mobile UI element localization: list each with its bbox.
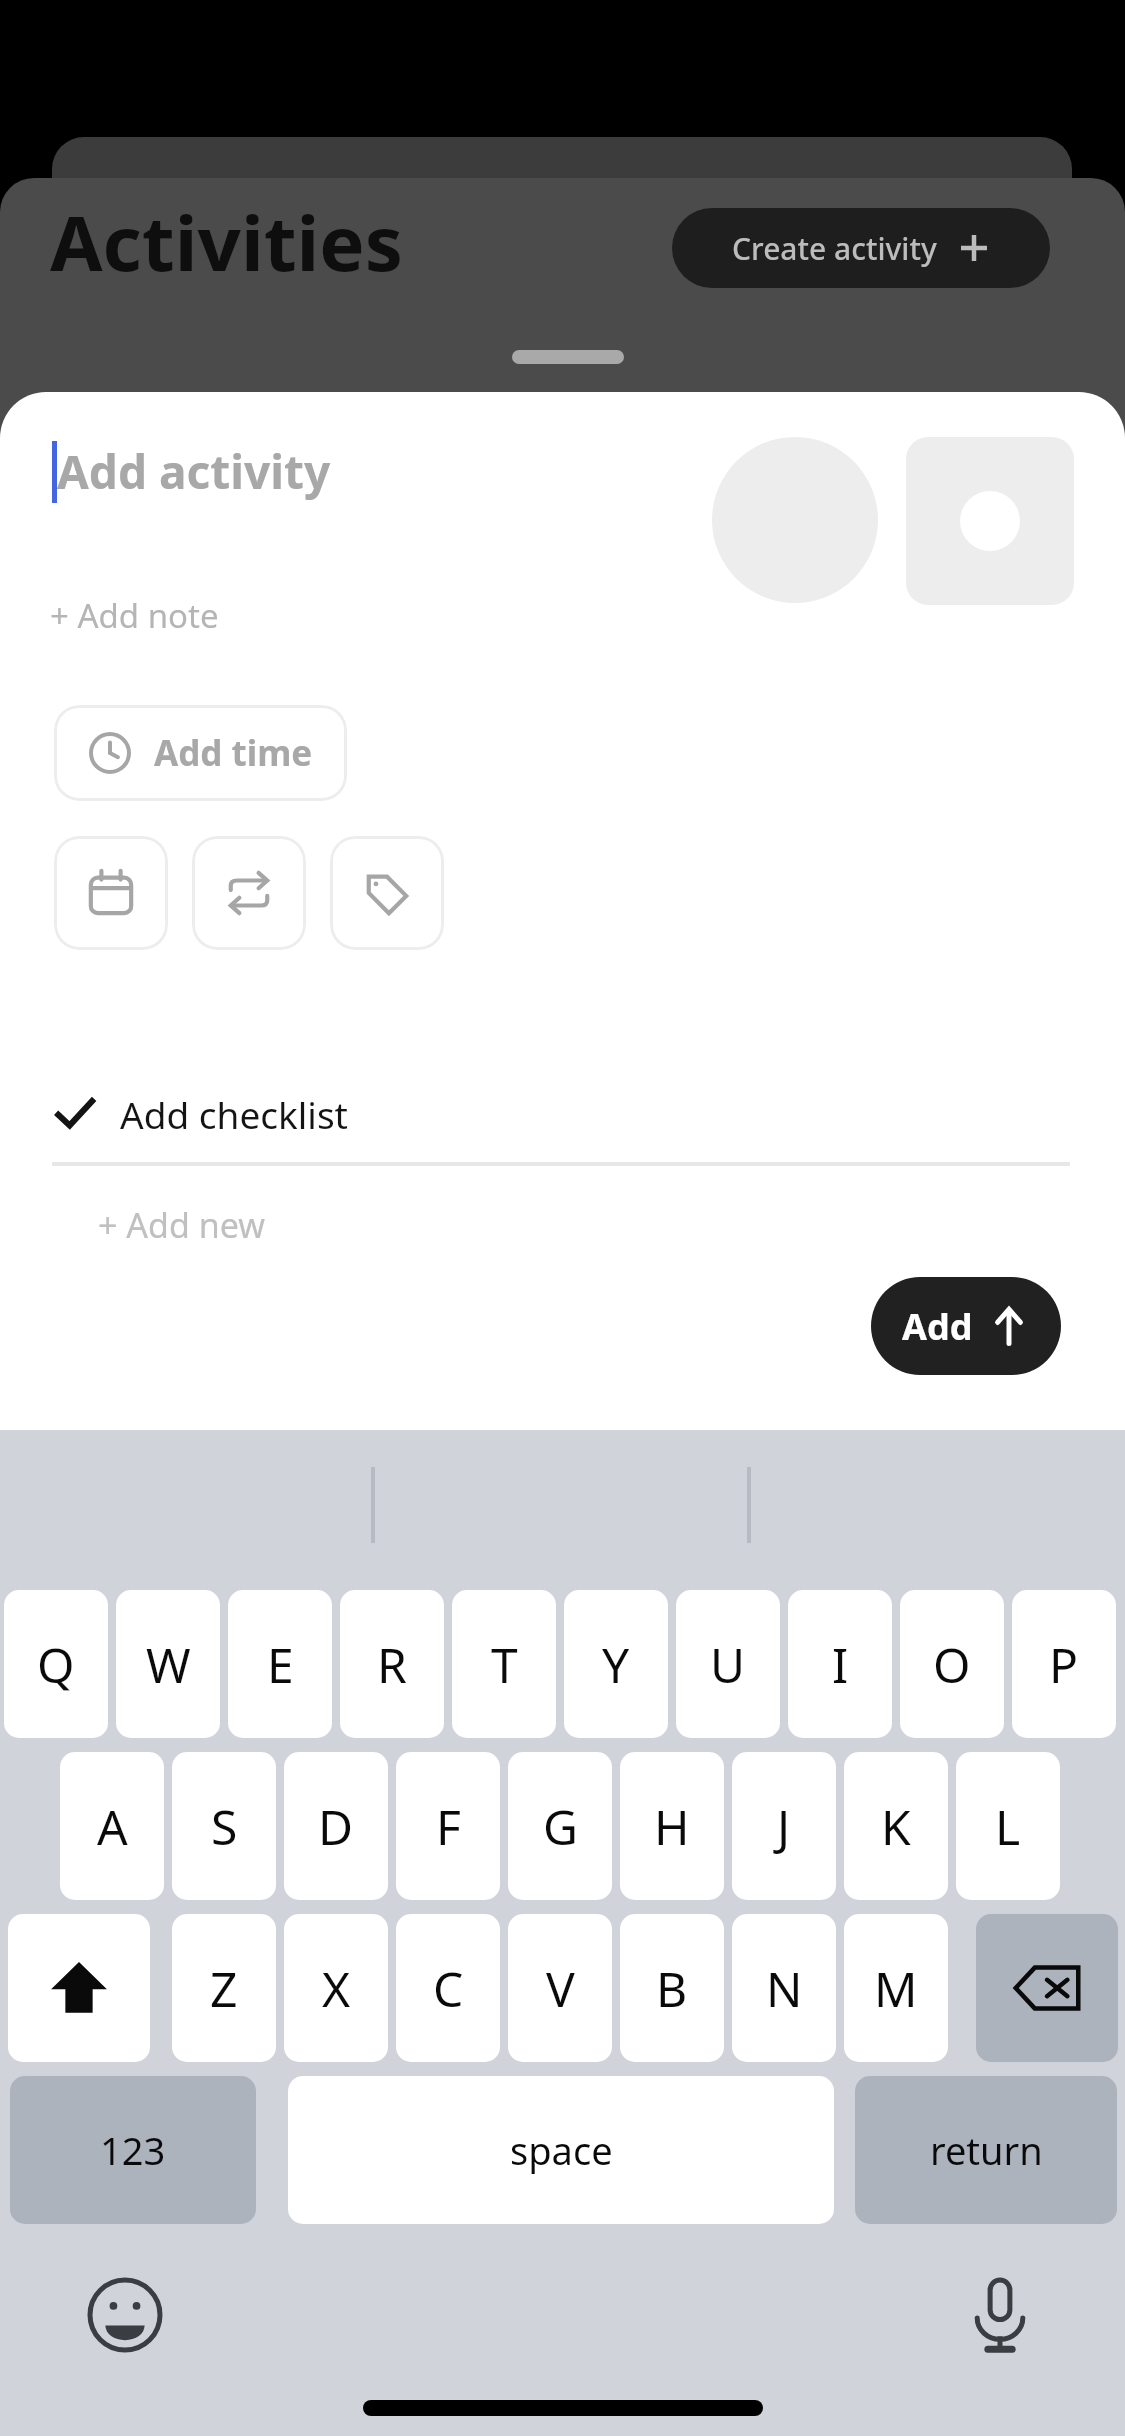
staticText: N: [766, 1956, 803, 2021]
staticText: B: [656, 1956, 688, 2021]
staticText: R: [377, 1632, 407, 1697]
button[interactable]: V: [508, 1914, 612, 2062]
button[interactable]: M: [844, 1914, 948, 2062]
button[interactable]: 123: [10, 2076, 256, 2224]
button[interactable]: I: [788, 1590, 892, 1738]
button[interactable]: D: [284, 1752, 388, 1900]
staticText: T: [491, 1632, 518, 1697]
button[interactable]: N: [732, 1914, 836, 2062]
staticText: Z: [210, 1956, 238, 2021]
staticText: D: [318, 1794, 354, 1859]
staticText: G: [543, 1794, 578, 1859]
button[interactable]: Backspace: [976, 1914, 1118, 2062]
button[interactable]: Emoji: [80, 2270, 170, 2360]
staticText: space: [510, 2124, 613, 2176]
button[interactable]: T: [452, 1590, 556, 1738]
button[interactable]: Add activity: [52, 440, 331, 503]
staticText: Add checklist: [120, 1089, 348, 1139]
button[interactable]: B: [620, 1914, 724, 2062]
button[interactable]: Z: [172, 1914, 276, 2062]
staticText: P: [1049, 1632, 1079, 1697]
staticText: J: [777, 1794, 791, 1859]
button[interactable]: Set date: [54, 836, 168, 950]
button[interactable]: Add checklist: [56, 1089, 348, 1139]
staticText: Activities: [50, 190, 403, 294]
staticText: Add activity: [57, 440, 331, 503]
button[interactable]: space: [288, 2076, 834, 2224]
button[interactable]: Add time: [54, 705, 347, 801]
button[interactable]: L: [956, 1752, 1060, 1900]
staticText: W: [146, 1632, 191, 1697]
button[interactable]: Pick icon: [906, 437, 1074, 605]
button[interactable]: Add tag: [330, 836, 444, 950]
staticText: Q: [37, 1632, 75, 1697]
button[interactable]: Q: [4, 1590, 108, 1738]
button[interactable]: Dictation: [955, 2270, 1045, 2360]
staticText: H: [654, 1794, 690, 1859]
button[interactable]: X: [284, 1914, 388, 2062]
staticText: F: [436, 1794, 461, 1859]
button[interactable]: Repeat: [192, 836, 306, 950]
staticText: S: [211, 1794, 238, 1859]
button[interactable]: J: [732, 1752, 836, 1900]
button[interactable]: Y: [564, 1590, 668, 1738]
button[interactable]: E: [228, 1590, 332, 1738]
staticText: L: [995, 1794, 1021, 1859]
button[interactable]: K: [844, 1752, 948, 1900]
staticText: A: [97, 1794, 128, 1859]
button[interactable]: F: [396, 1752, 500, 1900]
button[interactable]: Shift: [8, 1914, 150, 2062]
button[interactable]: Pick colour: [712, 437, 878, 603]
button[interactable]: G: [508, 1752, 612, 1900]
staticText: M: [874, 1956, 918, 2021]
button[interactable]: + Add note: [50, 593, 219, 638]
button[interactable]: U: [676, 1590, 780, 1738]
button[interactable]: R: [340, 1590, 444, 1738]
button[interactable]: Create activity: [672, 208, 1050, 288]
button[interactable]: Add: [871, 1277, 1061, 1375]
staticText: Add: [902, 1302, 973, 1351]
staticText: 123: [100, 2124, 166, 2176]
staticText: O: [933, 1632, 971, 1697]
staticText: I: [832, 1632, 849, 1697]
staticText: X: [322, 1956, 351, 2021]
staticText: C: [433, 1956, 464, 2021]
staticText: Create activity: [732, 228, 937, 269]
staticText: return: [930, 2124, 1043, 2176]
button[interactable]: H: [620, 1752, 724, 1900]
button[interactable]: A: [60, 1752, 164, 1900]
staticText: V: [546, 1956, 575, 2021]
staticText: Add time: [154, 729, 313, 777]
staticText: K: [881, 1794, 911, 1859]
button[interactable]: return: [855, 2076, 1117, 2224]
button[interactable]: W: [116, 1590, 220, 1738]
staticText: E: [267, 1632, 294, 1697]
staticText: Y: [602, 1632, 630, 1697]
button[interactable]: S: [172, 1752, 276, 1900]
button[interactable]: + Add new: [98, 1202, 265, 1248]
staticText: U: [710, 1632, 746, 1697]
button[interactable]: P: [1012, 1590, 1116, 1738]
button[interactable]: O: [900, 1590, 1004, 1738]
button[interactable]: C: [396, 1914, 500, 2062]
